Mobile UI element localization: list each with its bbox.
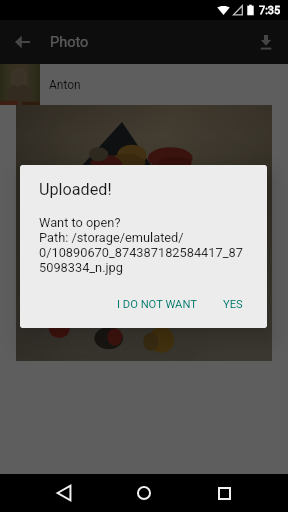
button[interactable]: YES	[215, 291, 251, 318]
button[interactable]: Recents	[206, 475, 242, 511]
button[interactable]	[16, 105, 272, 361]
staticText: Uploaded!	[39, 180, 112, 199]
button[interactable]: Download	[244, 20, 288, 64]
button[interactable]: Back	[46, 475, 82, 511]
staticText: 7:35	[259, 4, 281, 17]
staticText: Anton	[49, 78, 81, 92]
staticText: YES	[223, 298, 243, 311]
button[interactable]: Anton	[0, 64, 288, 105]
button[interactable]: Home	[126, 475, 162, 511]
button[interactable]: I DO NOT WANT	[109, 291, 205, 318]
staticText: I DO NOT WANT	[117, 298, 197, 311]
button[interactable]: Back	[0, 20, 44, 64]
staticText: Photo	[50, 34, 89, 51]
staticText: Want to open? Path: /storage/emulated/ 0…	[39, 215, 243, 275]
